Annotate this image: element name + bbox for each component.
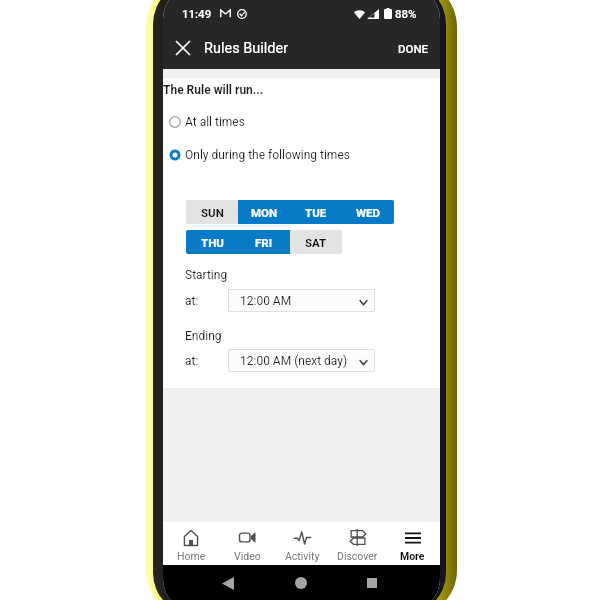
button[interactable]: Only during the following times xyxy=(163,144,440,165)
staticText: Starting xyxy=(185,268,228,282)
button[interactable]: Back xyxy=(211,570,245,596)
button[interactable]: THU xyxy=(186,230,238,254)
staticText: MON xyxy=(251,206,278,219)
staticText: THU xyxy=(201,236,224,249)
button[interactable]: Home xyxy=(284,570,318,596)
staticText: DONE xyxy=(398,42,429,55)
staticText: 12:00 AM (next day) xyxy=(240,354,348,368)
staticText: SAT xyxy=(305,236,327,249)
button[interactable]: At all times xyxy=(163,111,440,132)
button[interactable]: SUN xyxy=(186,200,238,224)
button[interactable]: TUE xyxy=(290,200,342,224)
staticText: 11:49 xyxy=(182,7,212,20)
button[interactable]: WED xyxy=(342,200,394,224)
button[interactable]: Discover xyxy=(330,522,385,565)
staticText: Activity xyxy=(285,550,320,562)
staticText: at: xyxy=(185,294,199,308)
button[interactable]: Video xyxy=(219,522,275,565)
staticText: 12:00 AM xyxy=(240,294,292,308)
button[interactable]: Recents xyxy=(355,570,389,596)
button[interactable]: Close xyxy=(165,27,201,69)
staticText: At all times xyxy=(185,115,245,129)
staticText: Rules Builder xyxy=(204,40,289,57)
staticText: FRI xyxy=(255,236,273,249)
button[interactable]: SAT xyxy=(290,230,342,254)
button[interactable]: 12:00 AM xyxy=(228,289,375,312)
button[interactable]: Activity xyxy=(275,522,330,565)
staticText: More xyxy=(400,550,425,562)
staticText: SUN xyxy=(201,206,224,219)
button[interactable]: Home xyxy=(163,522,219,565)
button[interactable]: MON xyxy=(238,200,290,224)
staticText: at: xyxy=(185,354,199,368)
staticText: The Rule will run... xyxy=(163,83,264,97)
staticText: Ending xyxy=(185,329,222,343)
staticText: Home xyxy=(177,550,206,562)
staticText: Video xyxy=(234,550,261,562)
staticText: Discover xyxy=(337,550,378,562)
button[interactable]: 12:00 AM (next day) xyxy=(228,349,375,372)
staticText: TUE xyxy=(305,206,327,219)
staticText: 88% xyxy=(395,7,417,20)
staticText: WED xyxy=(356,206,381,219)
button[interactable]: More xyxy=(385,522,440,565)
button[interactable]: FRI xyxy=(238,230,290,254)
staticText: Only during the following times xyxy=(185,148,350,162)
button[interactable]: DONE xyxy=(384,27,440,69)
